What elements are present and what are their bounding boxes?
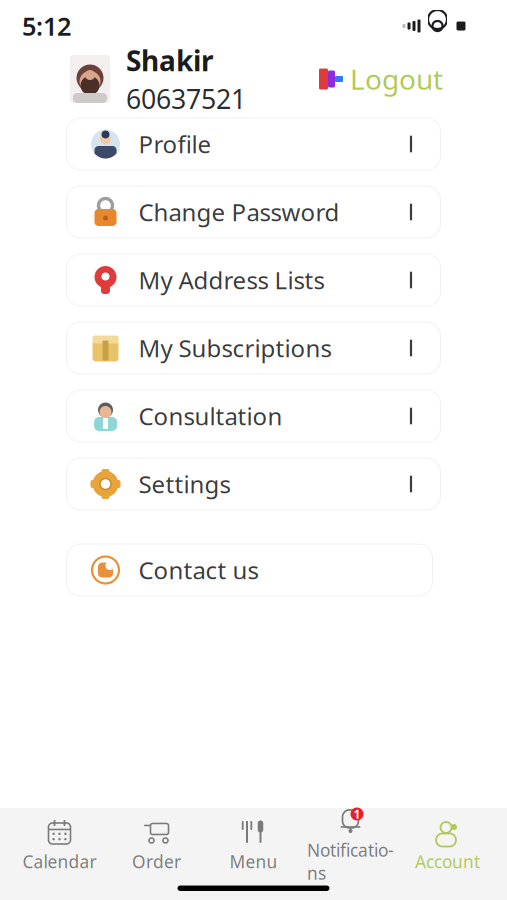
button[interactable]: My Address Lists [66, 254, 440, 306]
button[interactable]: Calendar [11, 820, 108, 872]
staticText: Consultation [138, 400, 282, 432]
button[interactable]: Change Password [66, 186, 440, 238]
staticText: Calendar [22, 850, 96, 873]
button[interactable]: Menu [205, 820, 302, 872]
button[interactable]: Settings [66, 458, 440, 510]
button[interactable]: Profile [66, 118, 440, 170]
staticText: Contact us [138, 554, 258, 586]
staticText: Order [132, 850, 181, 873]
staticText: Change Password [138, 196, 339, 228]
staticText: My Address Lists [138, 264, 324, 296]
button[interactable]: Order [108, 820, 205, 872]
staticText: Shakir [126, 42, 214, 79]
staticText: Notifications [307, 838, 394, 884]
button[interactable]: Contact us [66, 544, 432, 596]
staticText: Logout [350, 60, 443, 98]
button[interactable]: 1 [302, 820, 399, 872]
staticText: Menu [229, 850, 277, 873]
button[interactable]: Consultation [66, 390, 440, 442]
staticText: Account [415, 850, 480, 873]
staticText: Profile [138, 128, 211, 160]
button[interactable]: Logout [319, 60, 443, 98]
staticText: My Subscriptions [138, 332, 331, 364]
button[interactable]: My Subscriptions [66, 322, 440, 374]
staticText: 60637521 [126, 81, 246, 116]
staticText: Settings [138, 468, 230, 500]
button[interactable]: Account [399, 820, 496, 872]
staticText: 1 [353, 806, 360, 822]
staticText: 5:12 [22, 9, 71, 43]
